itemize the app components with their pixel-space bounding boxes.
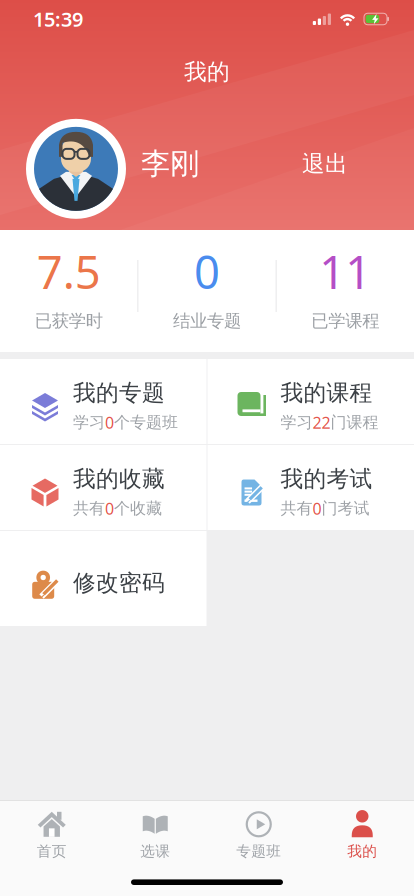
staticText: 门考试: [321, 499, 369, 518]
staticText: 李刚: [141, 146, 199, 182]
staticText: 0: [105, 498, 114, 519]
staticText: 结业专题: [173, 310, 241, 332]
button[interactable]: 我的考试: [207, 445, 414, 530]
staticText: 首页: [37, 842, 67, 860]
staticText: 退出: [302, 150, 348, 178]
staticText: 已获学时: [35, 310, 103, 332]
staticText: 修改密码: [73, 569, 165, 597]
button[interactable]: 我的: [310, 810, 414, 860]
staticText: 我的: [347, 842, 377, 860]
staticText: 我的: [184, 58, 230, 86]
staticText: 22: [312, 412, 330, 433]
button[interactable]: 我的课程: [207, 359, 414, 444]
staticText: 0: [312, 498, 321, 519]
staticText: 学习: [73, 413, 105, 432]
staticText: 我的考试: [280, 465, 372, 493]
button[interactable]: 我的收藏: [0, 445, 206, 530]
staticText: 共有: [73, 499, 105, 518]
staticText: 7.5: [37, 241, 101, 301]
staticText: 个收藏: [114, 499, 162, 518]
staticText: 我的课程: [280, 379, 372, 407]
staticText: 我的专题: [73, 379, 165, 407]
staticText: 个专题班: [114, 413, 178, 432]
button[interactable]: 首页: [0, 810, 103, 860]
button[interactable]: 专题班: [207, 810, 310, 860]
staticText: 0: [105, 412, 114, 433]
staticText: 专题班: [236, 842, 281, 860]
staticText: 我的收藏: [73, 465, 165, 493]
staticText: 15:39: [33, 6, 83, 32]
button[interactable]: 我的专题: [0, 359, 206, 444]
button[interactable]: 退出: [302, 150, 348, 178]
staticText: 门课程: [330, 413, 378, 432]
staticText: 学习: [280, 413, 312, 432]
button[interactable]: 修改密码: [0, 531, 206, 626]
staticText: 选课: [140, 842, 170, 860]
button[interactable]: 选课: [103, 810, 207, 860]
staticText: 0: [194, 241, 220, 301]
staticText: 已学课程: [311, 310, 379, 332]
staticText: 共有: [280, 499, 312, 518]
staticText: 11: [319, 241, 371, 301]
